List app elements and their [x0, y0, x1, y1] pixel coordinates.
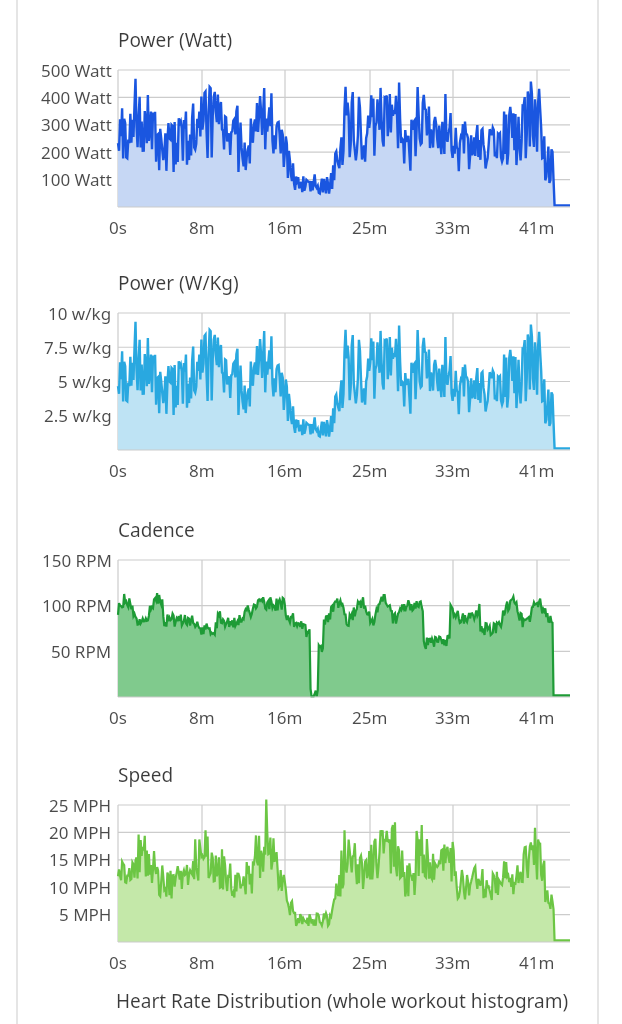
- button[interactable]: [0, 0, 622, 1024]
